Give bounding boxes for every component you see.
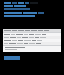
- button[interactable]: [3, 42, 61, 45]
- button[interactable]: [3, 36, 61, 39]
- button[interactable]: Open linked document: [4, 12, 44, 14]
- button[interactable]: [3, 29, 61, 32]
- button[interactable]: [3, 33, 61, 36]
- button[interactable]: [3, 39, 61, 42]
